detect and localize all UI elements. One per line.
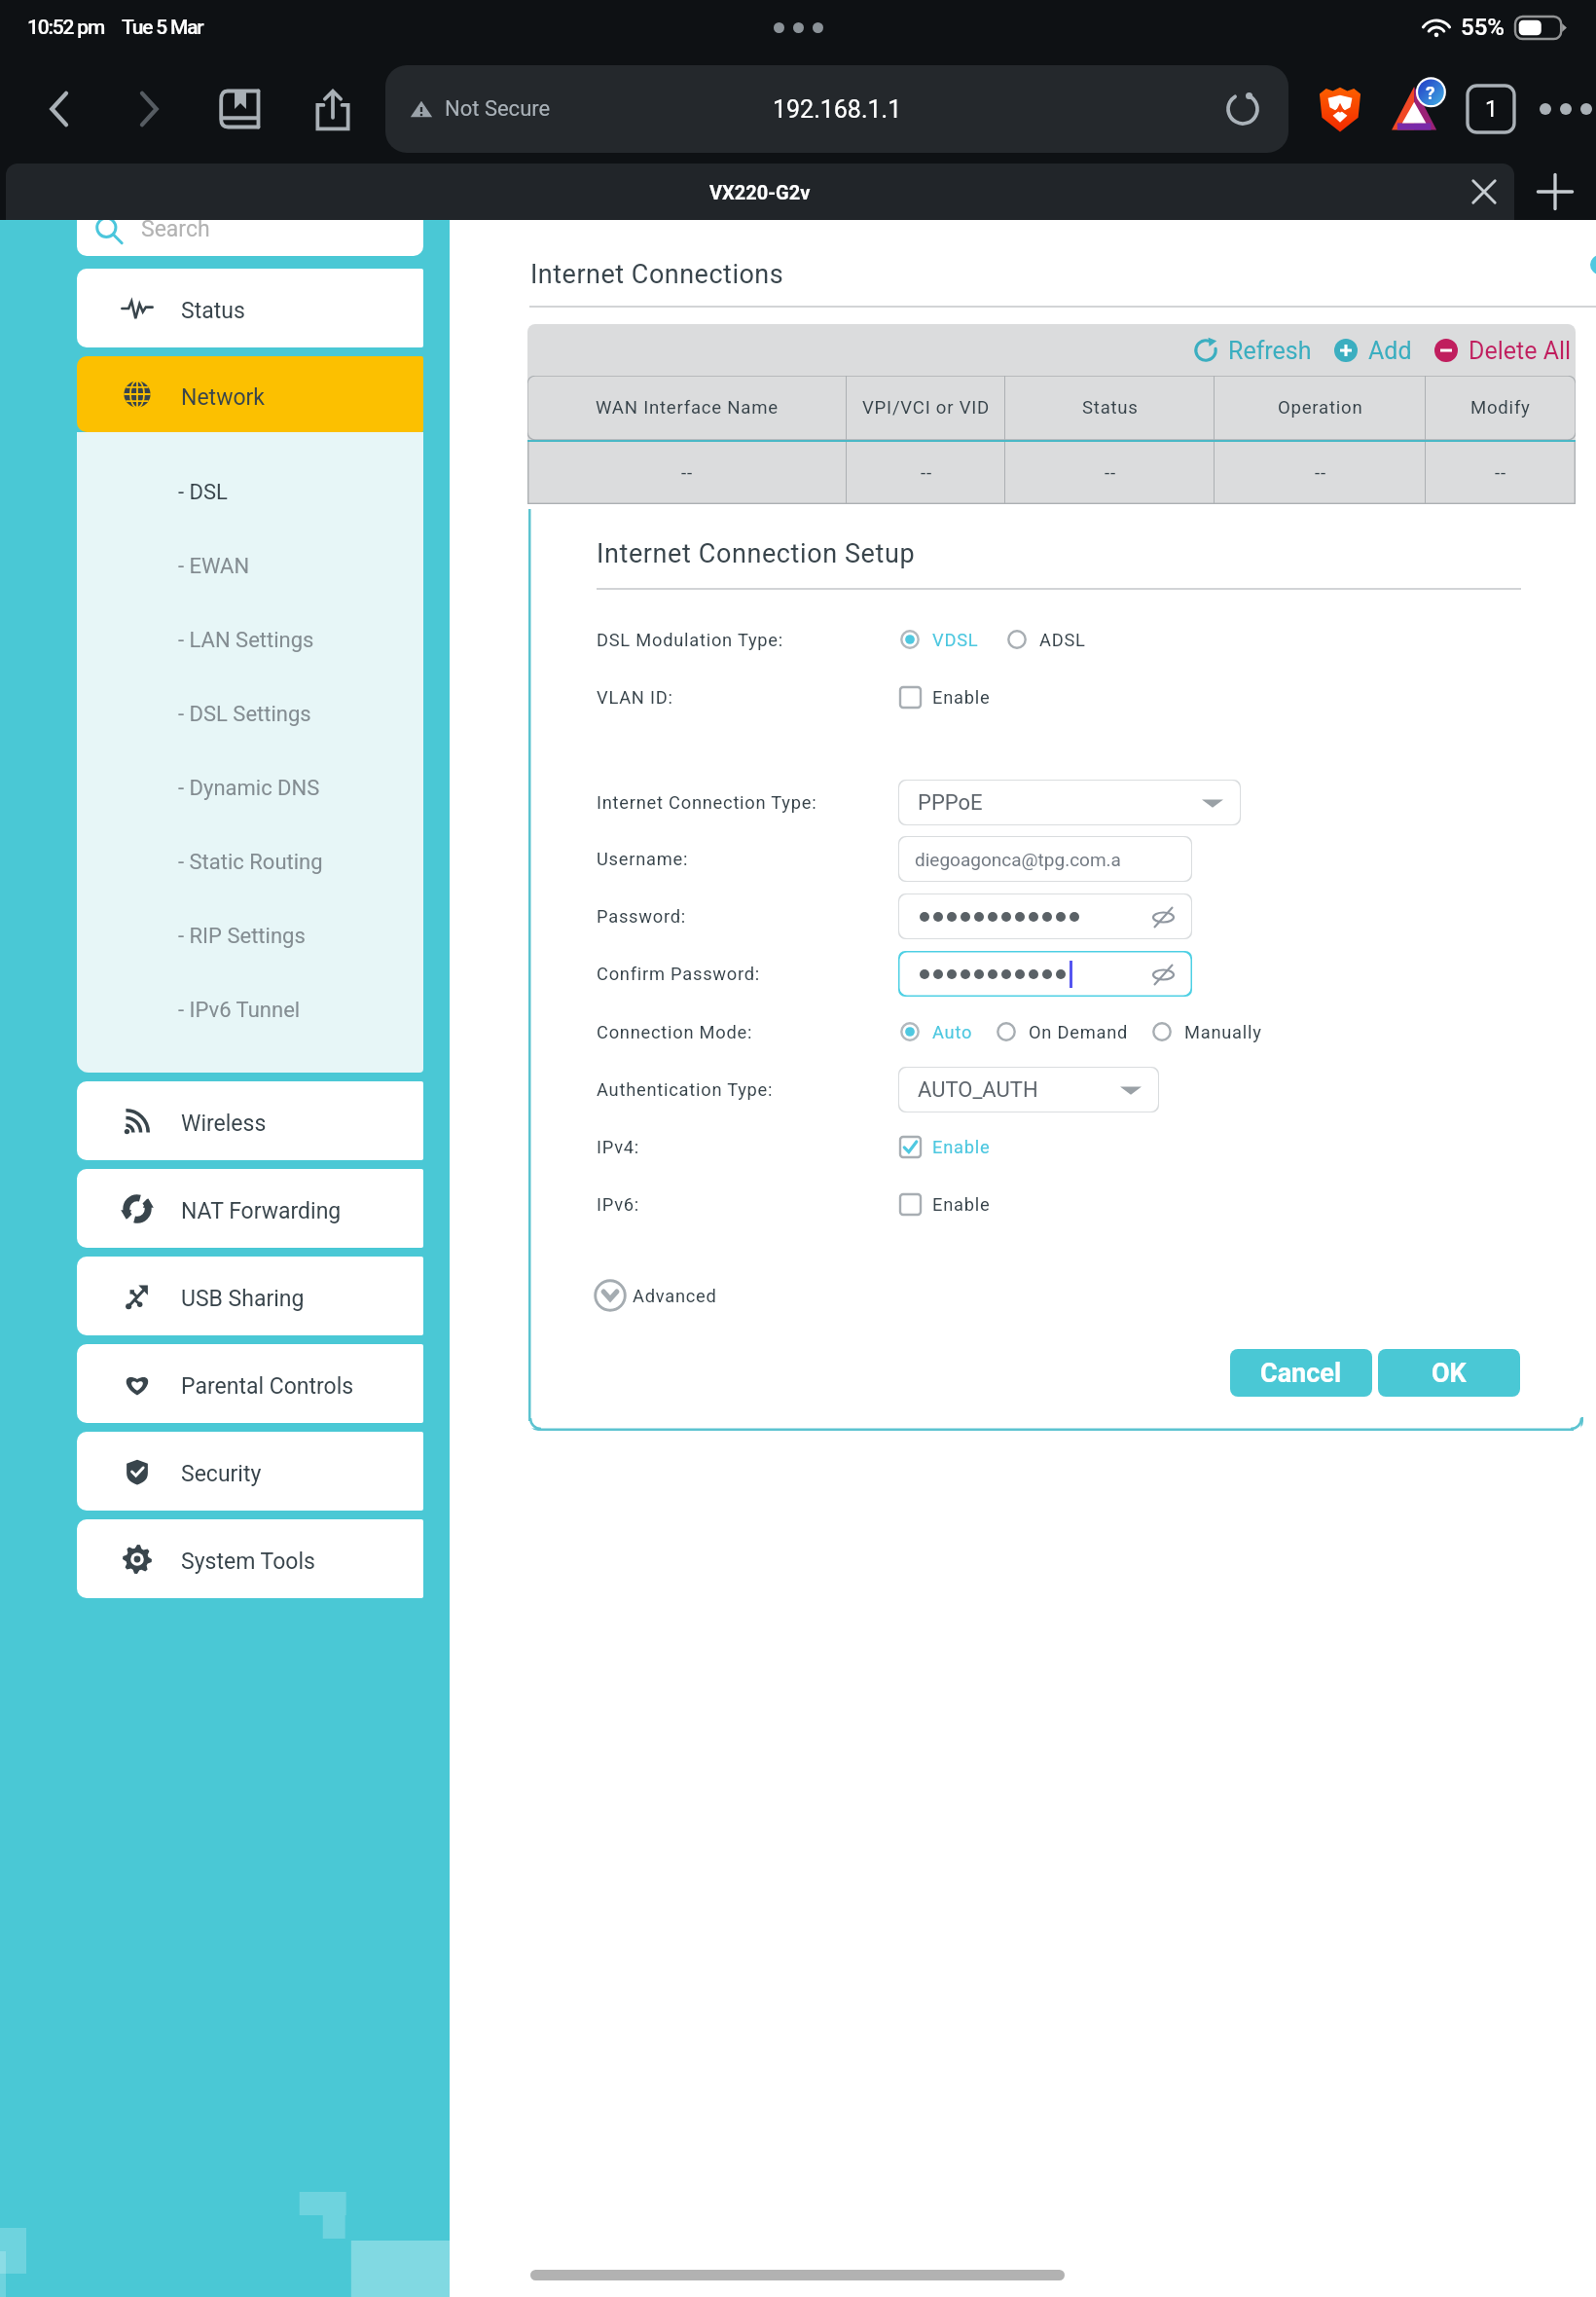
staticText: USB Sharing: [181, 1286, 305, 1312]
staticText: Security: [181, 1461, 262, 1487]
staticText: VLAN ID:: [597, 687, 673, 708]
button[interactable]: Status: [77, 269, 423, 347]
staticText: Internet Connections: [530, 259, 784, 290]
staticText: --: [681, 462, 693, 484]
staticText: 10:52 pm: [27, 16, 104, 40]
button[interactable]: - DSL: [77, 454, 423, 528]
button[interactable]: Refresh: [1191, 336, 1312, 365]
button[interactable]: Network: [77, 356, 423, 432]
staticText: - DSL Settings: [178, 702, 311, 727]
staticText: --: [1105, 462, 1116, 484]
button[interactable]: - LAN Settings: [77, 602, 423, 675]
button[interactable]: USB Sharing: [77, 1257, 423, 1335]
button[interactable]: New tab: [1514, 164, 1596, 220]
button[interactable]: VX220-G2v: [6, 164, 1514, 220]
button[interactable]: - IPv6 Tunnel: [77, 971, 423, 1045]
staticText: Confirm Password:: [597, 964, 761, 984]
button[interactable]: checkbox: [898, 1192, 922, 1216]
staticText: 55%: [1461, 14, 1505, 41]
staticText: AUTO_AUTH: [918, 1077, 1038, 1103]
staticText: VPI/VCI or VID: [862, 397, 991, 419]
staticText: PPPoE: [918, 790, 983, 816]
button[interactable]: AUTO_AUTH: [898, 1067, 1159, 1112]
button[interactable]: Show password: [1149, 961, 1177, 988]
button[interactable]: Advanced: [594, 1275, 717, 1316]
staticText: ?: [1426, 82, 1435, 103]
staticText: Username:: [597, 849, 689, 869]
button[interactable]: OK: [1378, 1349, 1520, 1397]
button[interactable]: - Dynamic DNS: [77, 749, 423, 823]
button[interactable]: - DSL Settings: [77, 675, 423, 749]
staticText: Cancel: [1260, 1358, 1342, 1389]
button[interactable]: option: [1150, 1020, 1174, 1043]
button[interactable]: Not Secure: [385, 65, 1288, 153]
staticText: - DSL: [178, 480, 228, 505]
button[interactable]: option: [898, 628, 922, 651]
button[interactable]: Reload: [1218, 85, 1267, 133]
button[interactable]: Wireless: [77, 1081, 423, 1160]
staticText: Internet Connection Type:: [597, 792, 817, 813]
button[interactable]: checkbox: [898, 1135, 922, 1158]
staticText: WAN Interface Name: [596, 397, 779, 419]
button[interactable]: PPPoE: [898, 780, 1241, 825]
staticText: Enable: [932, 687, 991, 708]
button[interactable]: Show password: [898, 893, 1192, 939]
staticText: 1: [1485, 96, 1498, 123]
staticText: IPv6:: [597, 1194, 639, 1215]
button[interactable]: option: [995, 1020, 1018, 1043]
staticText: - LAN Settings: [178, 628, 314, 653]
staticText: Status: [181, 298, 245, 324]
staticText: --: [921, 462, 932, 484]
staticText: System Tools: [181, 1549, 315, 1575]
button[interactable]: - EWAN: [77, 528, 423, 602]
button[interactable]: - Static Routing: [77, 823, 423, 897]
staticText: Refresh: [1228, 337, 1312, 365]
button[interactable]: checkbox: [898, 685, 922, 709]
button[interactable]: Show password: [898, 951, 1192, 997]
button[interactable]: option: [898, 1020, 922, 1043]
staticText: Operation: [1278, 397, 1363, 419]
staticText: Delete All: [1469, 337, 1572, 365]
staticText: - Static Routing: [178, 850, 323, 875]
staticText: On Demand: [1029, 1022, 1129, 1042]
button[interactable]: Brave Rewards: [1382, 74, 1452, 144]
button[interactable]: Brave Shields: [1310, 79, 1370, 139]
button[interactable]: System Tools: [77, 1519, 423, 1598]
button[interactable]: More options: [1536, 79, 1596, 139]
staticText: 192.168.1.1: [773, 95, 902, 124]
staticText: OK: [1432, 1358, 1467, 1389]
button[interactable]: Parental Controls: [77, 1344, 423, 1423]
button[interactable]: Share: [300, 76, 366, 142]
staticText: - Dynamic DNS: [178, 776, 320, 801]
button[interactable]: Back: [25, 75, 93, 143]
button[interactable]: Bookmarks: [208, 77, 272, 141]
button[interactable]: Search: [77, 220, 423, 256]
staticText: Connection Mode:: [597, 1022, 753, 1042]
staticText: Status: [1082, 397, 1139, 419]
button[interactable]: option: [1005, 628, 1029, 651]
staticText: Tue 5 Mar: [122, 16, 203, 40]
button[interactable]: diegoagonca@tpg.com.a: [898, 836, 1192, 882]
staticText: Internet Connection Setup: [597, 538, 916, 569]
staticText: Enable: [932, 1194, 991, 1215]
button[interactable]: Tabs: [1464, 82, 1518, 136]
staticText: Enable: [932, 1137, 991, 1157]
staticText: IPv4:: [597, 1137, 639, 1157]
button[interactable]: Show password: [1149, 903, 1177, 930]
staticText: Password:: [597, 906, 686, 927]
staticText: Add: [1368, 337, 1412, 365]
button[interactable]: - RIP Settings: [77, 897, 423, 971]
button[interactable]: Add: [1331, 336, 1412, 365]
button[interactable]: Security: [77, 1432, 423, 1511]
staticText: Search: [141, 220, 210, 242]
button[interactable]: Cancel: [1230, 1349, 1372, 1397]
button[interactable]: Close tab: [1462, 169, 1506, 214]
button[interactable]: NAT Forwarding: [77, 1169, 423, 1248]
staticText: Network: [181, 384, 265, 411]
button[interactable]: Forward: [115, 75, 183, 143]
staticText: diegoagonca@tpg.com.a: [915, 849, 1121, 870]
staticText: Modify: [1470, 397, 1531, 419]
staticText: Authentication Type:: [597, 1079, 774, 1100]
button[interactable]: Delete All: [1432, 336, 1572, 365]
staticText: NAT Forwarding: [181, 1198, 342, 1224]
